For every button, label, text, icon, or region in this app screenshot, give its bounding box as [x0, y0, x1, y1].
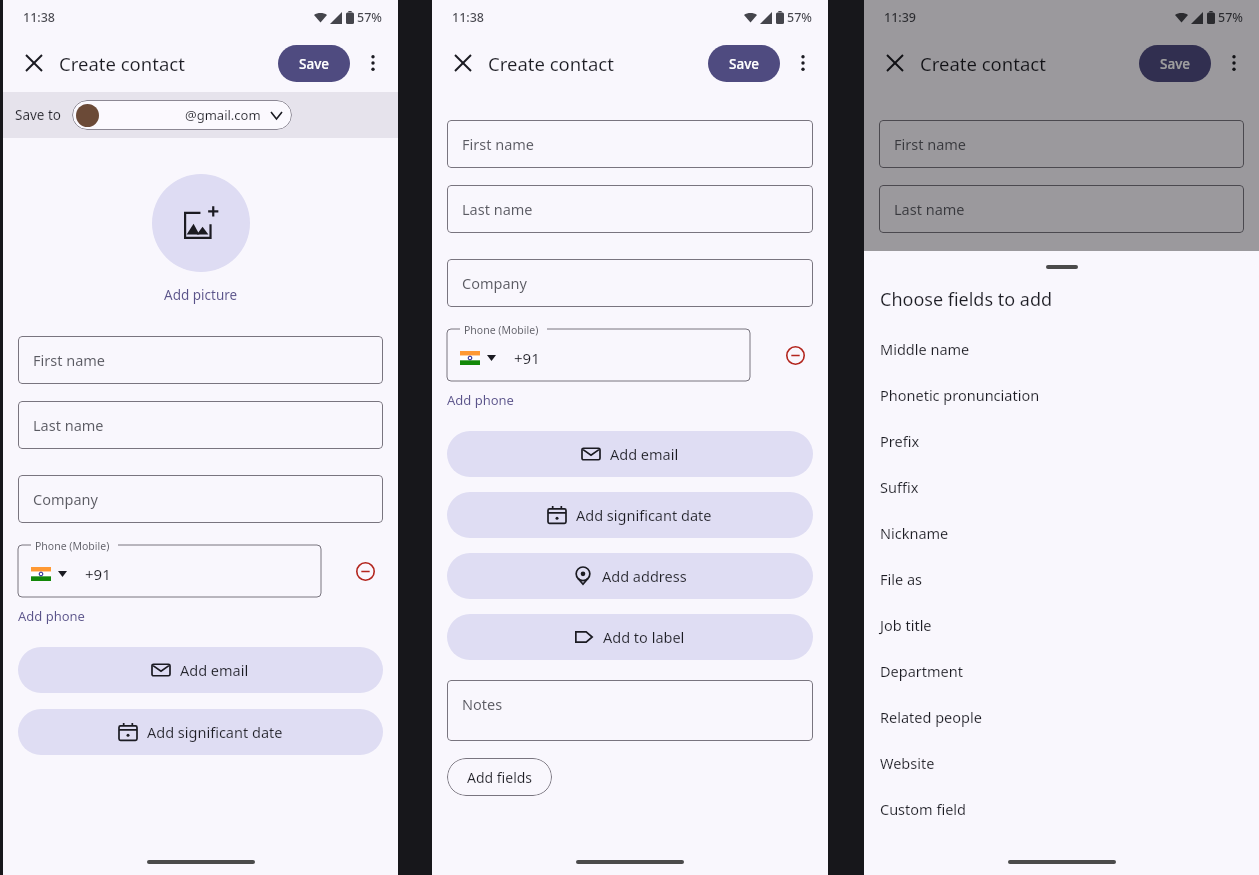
- staticText: +91: [514, 348, 540, 368]
- button[interactable]: Nickname: [864, 510, 1259, 556]
- button[interactable]: Add picture: [152, 174, 250, 272]
- button[interactable]: Suffix: [864, 464, 1259, 510]
- staticText: Suffix: [880, 477, 919, 497]
- button[interactable]: Website: [864, 740, 1259, 786]
- button[interactable]: Prefix: [864, 418, 1259, 464]
- staticText: +91: [85, 564, 111, 584]
- button[interactable]: Add phone: [18, 607, 85, 625]
- staticText: Phonetic pronunciation: [880, 385, 1040, 405]
- staticText: Save: [1160, 55, 1191, 73]
- button[interactable]: Job title: [864, 602, 1259, 648]
- staticText: Save: [299, 55, 330, 73]
- button[interactable]: Close: [876, 44, 914, 82]
- staticText: Website: [880, 753, 935, 773]
- button[interactable]: Remove phone: [347, 553, 383, 589]
- staticText: Add email: [610, 444, 679, 464]
- button[interactable]: First name: [447, 120, 813, 168]
- staticText: Add significant date: [147, 722, 283, 742]
- button[interactable]: Add email: [447, 431, 813, 477]
- button[interactable]: Company: [18, 475, 383, 523]
- button[interactable]: Custom field: [864, 786, 1259, 832]
- button[interactable]: Add phone: [447, 391, 514, 409]
- staticText: Company: [462, 273, 527, 293]
- button[interactable]: Save: [708, 45, 780, 82]
- staticText: Nickname: [880, 523, 949, 543]
- staticText: Create contact: [488, 51, 614, 76]
- staticText: Company: [33, 489, 98, 509]
- button[interactable]: Close: [444, 44, 482, 82]
- staticText: 11:39: [884, 9, 917, 26]
- button[interactable]: First name: [18, 336, 383, 384]
- button[interactable]: File as: [864, 556, 1259, 602]
- staticText: Phone (Mobile): [35, 539, 110, 553]
- button[interactable]: More options: [1215, 44, 1253, 82]
- button[interactable]: Add address: [447, 553, 813, 599]
- staticText: Job title: [880, 615, 932, 635]
- staticText: Department: [880, 661, 963, 681]
- staticText: Prefix: [880, 431, 920, 451]
- staticText: File as: [880, 569, 923, 589]
- button[interactable]: First name: [879, 120, 1244, 168]
- staticText: Last name: [33, 415, 104, 435]
- staticText: 57%: [357, 9, 382, 26]
- button[interactable]: Close: [15, 44, 53, 82]
- staticText: Save: [729, 55, 760, 73]
- button[interactable]: Notes: [447, 680, 813, 741]
- staticText: Add picture: [164, 286, 238, 304]
- staticText: Create contact: [59, 51, 185, 76]
- button[interactable]: Add significant date: [447, 492, 813, 538]
- button[interactable]: Department: [864, 648, 1259, 694]
- staticText: Choose fields to add: [880, 287, 1053, 312]
- staticText: 11:38: [452, 9, 485, 26]
- staticText: Add email: [180, 660, 249, 680]
- button[interactable]: Add fields: [447, 758, 552, 796]
- button[interactable]: Save: [1139, 45, 1211, 82]
- button[interactable]: Last name: [447, 185, 813, 233]
- staticText: Add significant date: [576, 505, 712, 525]
- staticText: Create contact: [920, 51, 1046, 76]
- button[interactable]: Add significant date: [18, 709, 383, 755]
- button[interactable]: Phone (Mobile): [18, 545, 321, 597]
- staticText: Add fields: [467, 768, 533, 787]
- staticText: Last name: [462, 199, 533, 219]
- button[interactable]: Save: [278, 45, 350, 82]
- staticText: Save to: [15, 106, 62, 124]
- button[interactable]: More options: [354, 44, 392, 82]
- button[interactable]: @gmail.com: [72, 100, 292, 130]
- staticText: Middle name: [880, 339, 970, 359]
- button[interactable]: Last name: [879, 185, 1244, 233]
- button[interactable]: Add to label: [447, 614, 813, 660]
- button[interactable]: Middle name: [864, 326, 1259, 372]
- button[interactable]: Phone (Mobile): [447, 329, 750, 381]
- button[interactable]: More options: [784, 44, 822, 82]
- staticText: First name: [33, 350, 106, 370]
- staticText: @gmail.com: [185, 106, 261, 124]
- staticText: Add to label: [603, 627, 685, 647]
- button[interactable]: Company: [447, 259, 813, 307]
- staticText: 57%: [787, 9, 812, 26]
- staticText: First name: [462, 134, 535, 154]
- button[interactable]: Phonetic pronunciation: [864, 372, 1259, 418]
- staticText: Last name: [894, 199, 965, 219]
- staticText: 11:38: [23, 9, 56, 26]
- staticText: Custom field: [880, 799, 966, 819]
- button[interactable]: Add email: [18, 647, 383, 693]
- staticText: Related people: [880, 707, 982, 727]
- staticText: Add address: [602, 566, 687, 586]
- staticText: First name: [894, 134, 967, 154]
- button[interactable]: Related people: [864, 694, 1259, 740]
- button[interactable]: Remove phone: [777, 337, 813, 373]
- staticText: Phone (Mobile): [464, 323, 539, 337]
- button[interactable]: Last name: [18, 401, 383, 449]
- staticText: 57%: [1218, 9, 1243, 26]
- staticText: Notes: [462, 694, 503, 714]
